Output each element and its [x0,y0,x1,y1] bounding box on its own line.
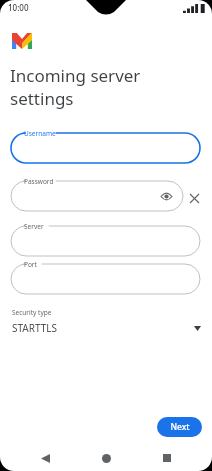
staticText: Incoming server [10,64,141,87]
button[interactable]: Recent apps [156,447,178,469]
staticText: Port [24,260,37,269]
button[interactable]: Server field [11,226,200,256]
staticText: Password [24,177,54,186]
button[interactable]: Next [157,417,202,437]
staticText: STARTTLS [12,321,58,335]
staticText: Username [24,129,56,138]
button[interactable]: Back [34,447,56,469]
button[interactable]: Clear password [186,190,202,206]
staticText: Next [170,421,190,433]
button[interactable]: Show password [159,189,173,203]
staticText: Security type [12,308,52,317]
button[interactable]: Home [95,447,117,469]
button[interactable]: Port field [11,264,200,294]
button[interactable]: Username field [11,133,200,163]
staticText: 10:00 [8,2,29,13]
staticText: settings [10,87,74,110]
button[interactable]: Password field [11,181,183,211]
button[interactable]: Security type STARTTLS [11,308,201,340]
staticText: Server [24,222,44,231]
